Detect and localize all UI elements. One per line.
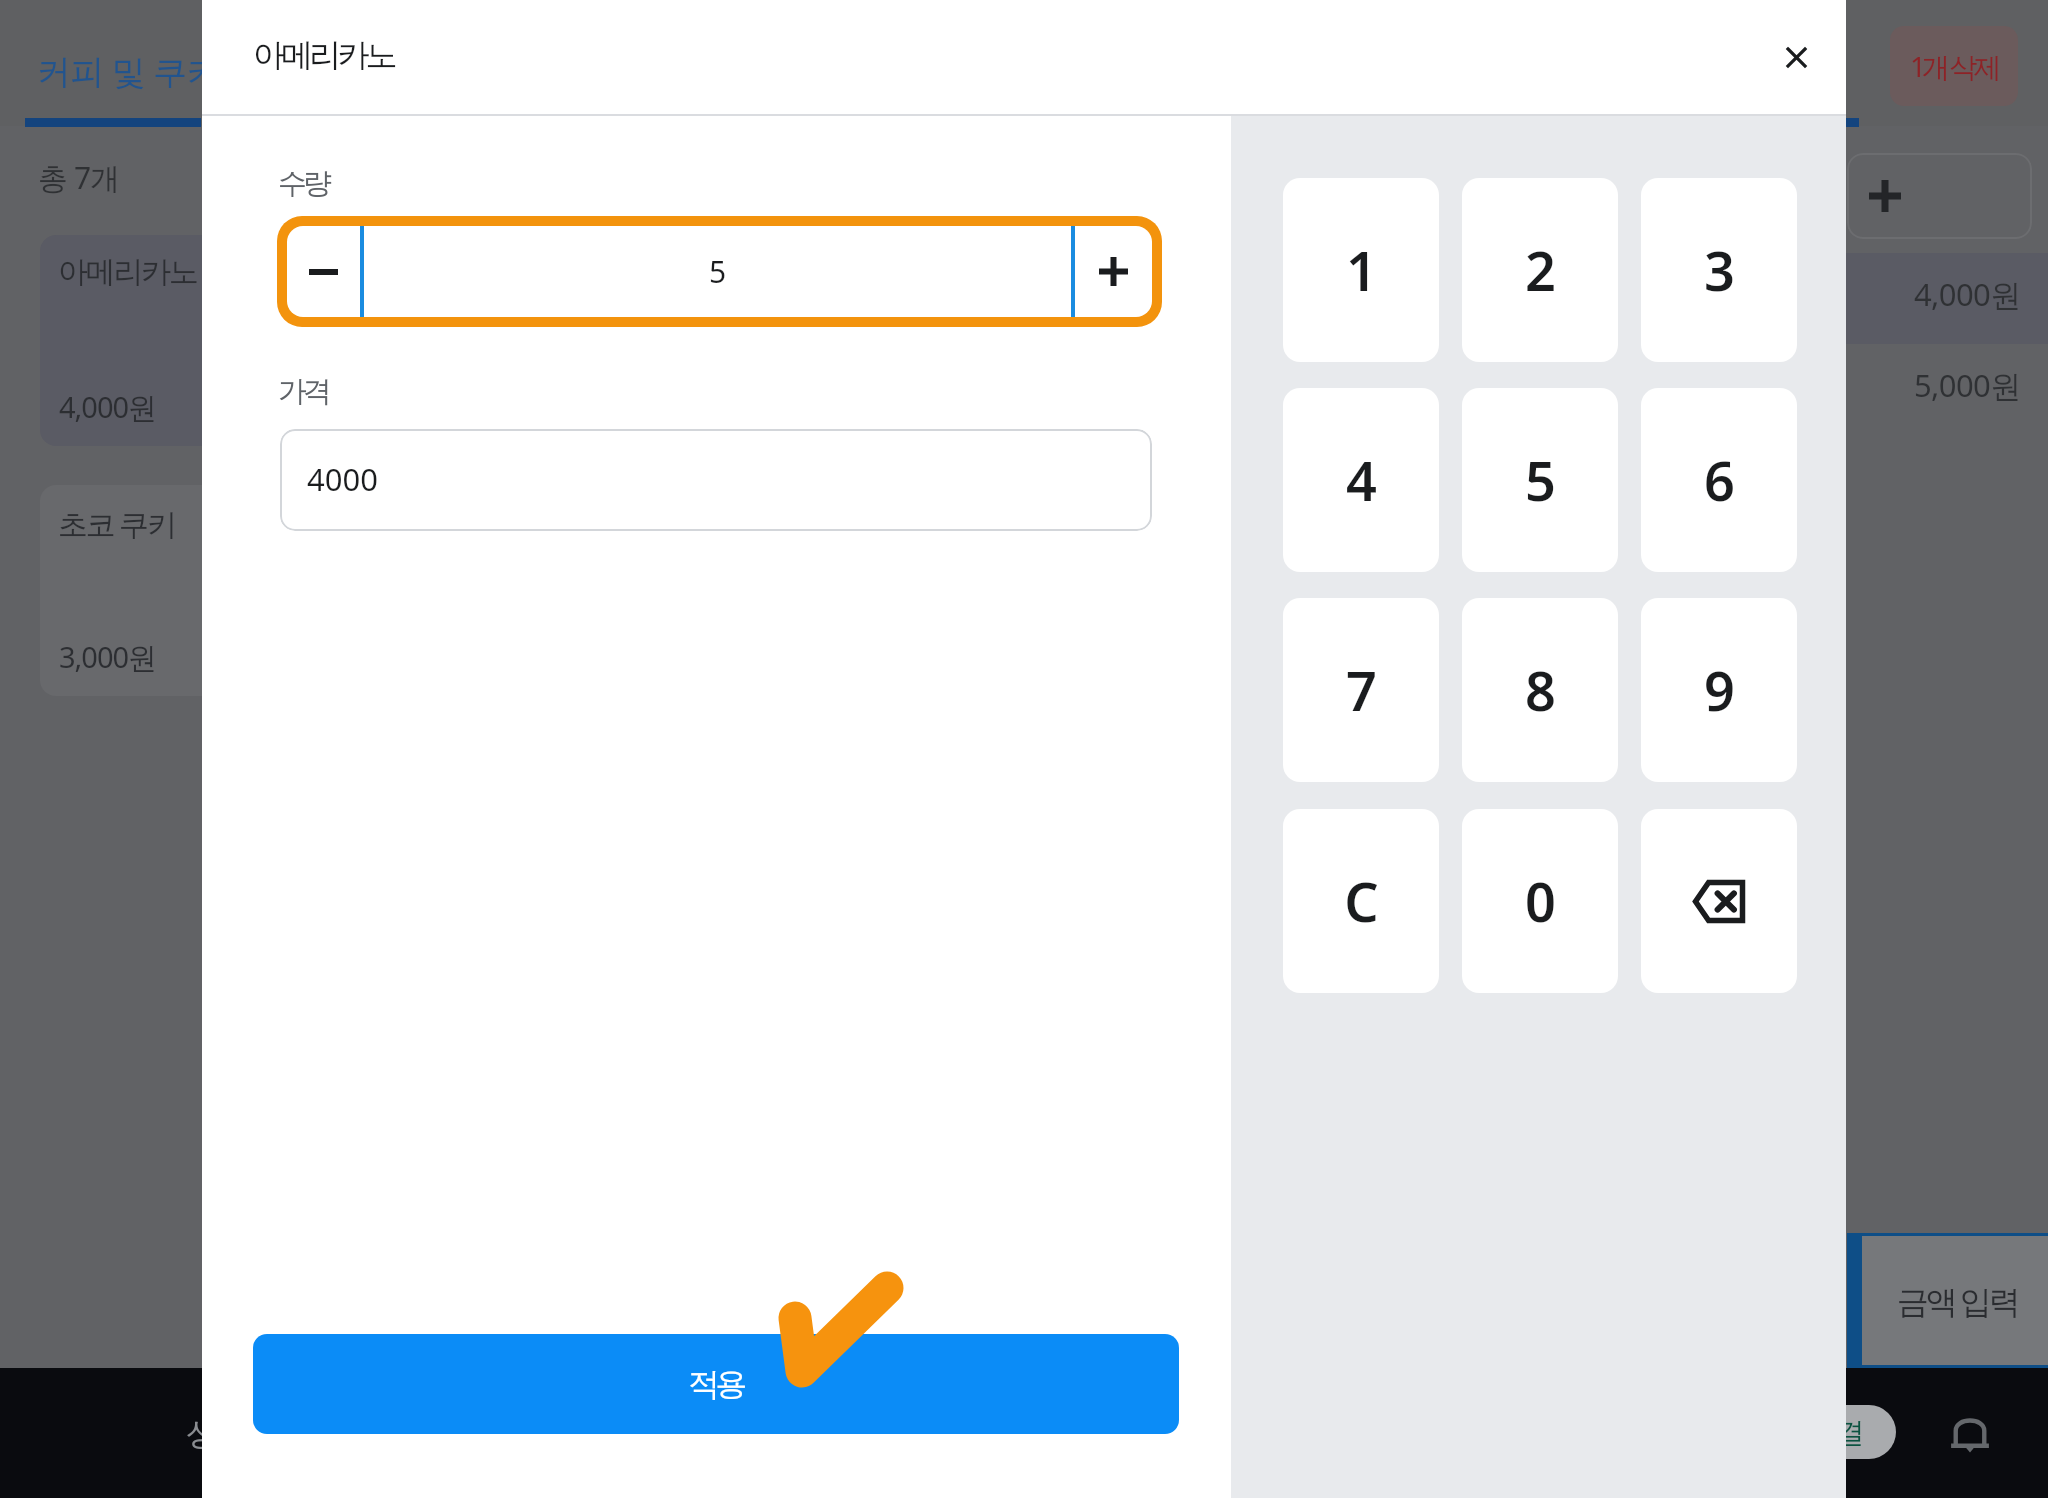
staticText: 적용 [688,1364,744,1404]
staticText: 상품 [186,1414,244,1454]
button[interactable]: 7 [1283,598,1439,782]
button[interactable]: 8 [1462,598,1618,782]
staticText: 6 [1704,443,1735,517]
staticText: 7 [1346,653,1377,727]
button[interactable]: 금액 입력 [1862,1236,2048,1365]
staticText: 초코 쿠키 [58,503,175,544]
staticText: 1개 삭제 [1910,47,1998,85]
staticText: 1 [1346,233,1377,307]
button[interactable]: Close [1760,21,1832,93]
staticText: 4 [1346,443,1377,517]
button[interactable]: 적용 [253,1334,1179,1434]
button[interactable]: Notifications [1945,1409,1995,1459]
button[interactable]: Decrease quantity [287,226,360,317]
staticText: 수량 [278,165,328,202]
button[interactable]: Add item [1847,153,2032,239]
button[interactable]: 5 [1462,388,1618,572]
staticText: 0 [1525,864,1556,938]
staticText: 커피 및 쿠키 [37,48,215,94]
button[interactable]: 2 [1462,178,1618,362]
button[interactable]: 아메리카노 [40,235,220,446]
staticText: 아메리카노 [253,35,394,75]
staticText: 4000 [307,458,378,500]
staticText: 5,000원 [1914,364,2021,406]
button[interactable]: 1 [1283,178,1439,362]
staticText: 5 [1525,443,1556,517]
button[interactable]: 연결 [1776,1405,1896,1459]
staticText: 금액 입력 [1897,1279,2018,1323]
staticText: 3,000원 [59,637,157,677]
button[interactable]: Increase quantity [1075,226,1152,317]
button[interactable]: 0 [1462,809,1618,993]
button[interactable]: Backspace [1641,809,1797,993]
button[interactable]: 1개 삭제 [1890,26,2018,106]
button[interactable]: 4000 [280,429,1152,531]
button[interactable]: 3 [1641,178,1797,362]
staticText: 5 [709,251,727,292]
staticText: 8 [1525,653,1556,727]
button[interactable]: C [1283,809,1439,993]
staticText: 9 [1704,653,1735,727]
button[interactable]: 초코 쿠키 [40,485,220,696]
button[interactable]: 4 [1283,388,1439,572]
staticText: 총 7개 [38,157,120,198]
staticText: 4,000원 [1914,273,2021,315]
button[interactable]: 커피 및 쿠키 [25,0,203,119]
staticText: 아메리카노 [58,253,197,291]
staticText: 2 [1525,233,1556,307]
staticText: 4,000원 [59,387,157,427]
staticText: 연결 [1811,1415,1862,1450]
staticText: 가격 [278,373,328,410]
staticText: C [1344,864,1379,938]
button[interactable]: 6 [1641,388,1797,572]
staticText: 3 [1704,233,1735,307]
button[interactable]: 9 [1641,598,1797,782]
